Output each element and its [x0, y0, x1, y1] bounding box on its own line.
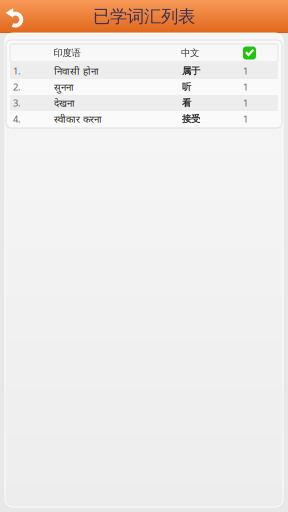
- staticText: 看: [182, 97, 191, 109]
- staticText: 印度语: [53, 47, 80, 59]
- staticText: 已学词汇列表: [93, 6, 195, 27]
- staticText: 1: [243, 81, 248, 93]
- staticText: 听: [182, 81, 191, 93]
- staticText: 接受: [182, 113, 200, 125]
- staticText: सुनना: [54, 80, 74, 94]
- staticText: निवासी होना: [54, 64, 99, 78]
- staticText: 属于: [182, 65, 200, 77]
- staticText: 1: [243, 65, 248, 77]
- button[interactable]: Back: [0, 3, 34, 33]
- staticText: 2.: [13, 81, 21, 93]
- staticText: 中文: [181, 47, 199, 59]
- staticText: 1: [243, 97, 248, 109]
- staticText: 3.: [13, 97, 21, 109]
- staticText: 1.: [13, 65, 21, 77]
- staticText: 4.: [13, 113, 21, 125]
- staticText: 1: [243, 113, 248, 125]
- staticText: स्वीकार करना: [54, 112, 102, 126]
- staticText: देखना: [54, 96, 75, 110]
